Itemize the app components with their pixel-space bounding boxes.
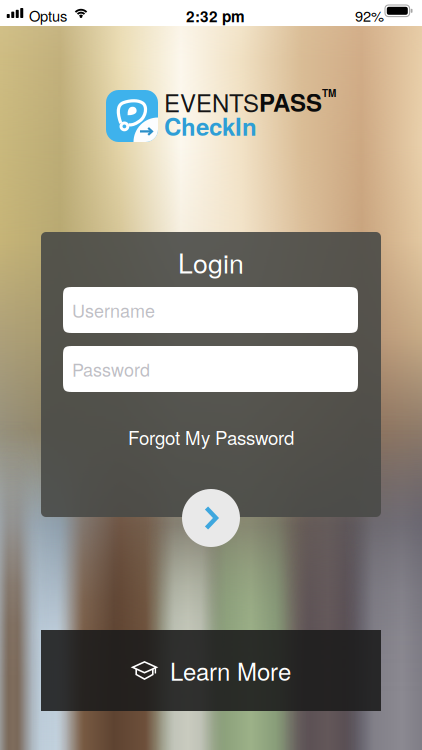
staticText: Learn More [170, 653, 291, 688]
staticText: Password [72, 356, 150, 382]
button[interactable]: Forgot My Password [41, 422, 381, 452]
staticText: Optus [29, 5, 67, 26]
staticText: TM [322, 86, 336, 100]
button[interactable]: Username [63, 287, 358, 333]
staticText: PASS [259, 85, 322, 119]
staticText: Login [178, 243, 244, 281]
staticText: EVENTS [164, 85, 259, 119]
button[interactable]: Password [63, 346, 358, 392]
staticText: Forgot My Password [128, 424, 294, 450]
staticText: CheckIn [164, 109, 257, 143]
staticText: 2:32 pm [186, 5, 245, 27]
button[interactable]: Learn More [41, 630, 381, 711]
button[interactable]: Sign in [182, 489, 240, 547]
staticText: 92% [355, 5, 384, 26]
staticText: Username [72, 297, 155, 323]
